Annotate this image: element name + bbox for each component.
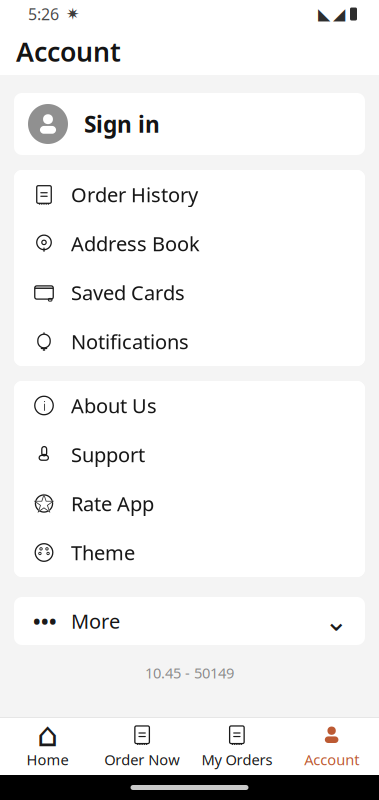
staticText: Account	[304, 750, 359, 769]
button[interactable]: i	[14, 381, 365, 430]
button[interactable]: Address Book	[14, 219, 365, 268]
staticText: Account	[16, 34, 121, 69]
staticText: ⌂	[37, 716, 58, 754]
button[interactable]: Order Now	[95, 718, 190, 775]
staticText: Rate App	[71, 490, 154, 517]
staticText: 5:26	[28, 3, 59, 25]
staticText: Notifications	[71, 328, 189, 355]
staticText: Order Now	[104, 750, 180, 769]
staticText: More	[71, 608, 120, 634]
staticText: My Orders	[201, 750, 272, 769]
button[interactable]: ⌂	[0, 718, 95, 775]
staticText: ⌄	[324, 605, 347, 637]
staticText: ◣	[318, 5, 330, 23]
button[interactable]: ★	[14, 479, 365, 528]
staticText: Support	[71, 441, 145, 468]
staticText: ✷	[66, 5, 79, 23]
staticText: Order History	[71, 181, 198, 208]
button[interactable]: Account	[284, 718, 379, 775]
staticText: ☆	[32, 488, 56, 519]
button[interactable]: Sign in	[14, 93, 365, 155]
staticText: •••	[33, 608, 57, 634]
button[interactable]: Order History	[14, 170, 365, 219]
staticText: Address Book	[71, 230, 200, 257]
staticText: i	[42, 397, 45, 414]
button[interactable]: Support	[14, 430, 365, 479]
button[interactable]: •••	[14, 597, 365, 645]
staticText: Theme	[71, 539, 135, 566]
staticText: ◢	[333, 5, 345, 23]
button[interactable]: Theme	[14, 528, 365, 577]
staticText: Saved Cards	[71, 279, 185, 306]
button[interactable]: Saved Cards	[14, 268, 365, 317]
button[interactable]: My Orders	[189, 718, 284, 775]
staticText: About Us	[71, 392, 157, 419]
staticText: Home	[26, 750, 68, 769]
staticText: Sign in	[84, 109, 160, 139]
button[interactable]: Notifications	[14, 317, 365, 366]
staticText: ★	[32, 488, 56, 519]
staticText: 10.45 - 50149	[145, 663, 234, 682]
